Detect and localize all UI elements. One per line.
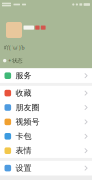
staticText: 服务 (16, 71, 32, 81)
button[interactable]: 收藏 (0, 86, 92, 100)
staticText: + 状态 (8, 57, 22, 64)
button[interactable]: 卡包 (0, 129, 92, 143)
button[interactable]: 视频号 (0, 115, 92, 129)
staticText: 表情 (16, 146, 32, 156)
button[interactable]: + 状态 (0, 57, 22, 64)
button[interactable]: 朋友圈 (0, 100, 92, 115)
staticText: 设置 (16, 163, 32, 173)
staticText: 卡包 (16, 131, 32, 141)
button[interactable]: 表情 (0, 143, 92, 158)
staticText: 收藏 (16, 88, 32, 98)
staticText: 朋友圈 (16, 103, 40, 112)
button[interactable] (0, 22, 92, 38)
staticText: 视频号 (16, 117, 40, 127)
button[interactable]: 服务 (0, 68, 92, 83)
button[interactable]: 设置 (0, 161, 92, 175)
staticText: 吖( ˙ω˙ )Ъ (4, 44, 25, 51)
